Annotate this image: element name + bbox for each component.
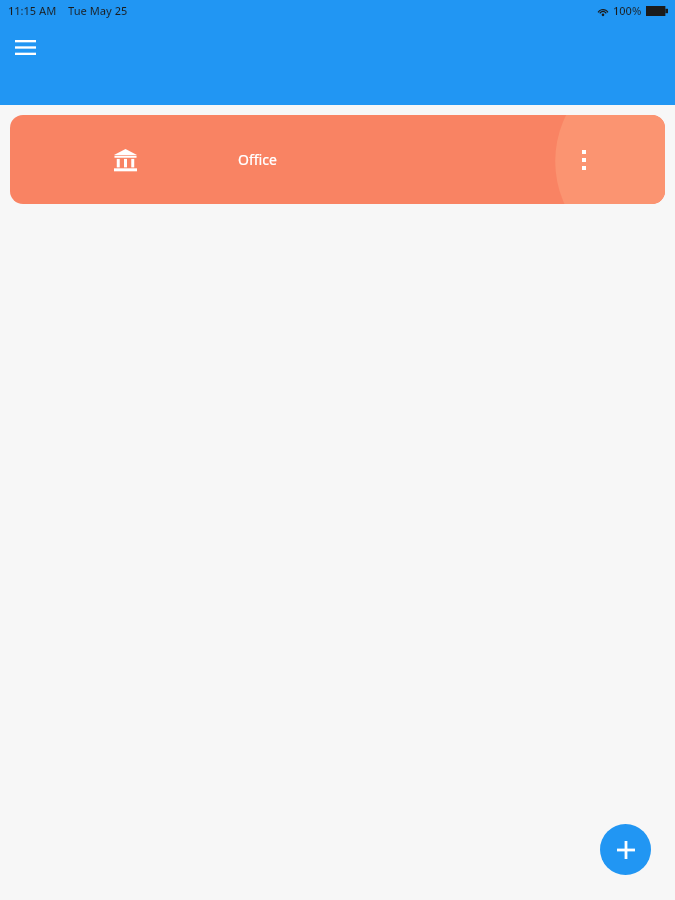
staticText: 100%	[613, 3, 642, 18]
button[interactable]: Add	[600, 824, 651, 875]
button[interactable]: Open navigation menu	[4, 26, 46, 68]
staticText: Tue May 25	[68, 3, 128, 18]
staticText: 11:15 AM	[8, 3, 57, 18]
button[interactable]: More options	[563, 139, 605, 181]
staticText: Office	[238, 150, 277, 169]
button[interactable]: Office	[10, 115, 665, 204]
